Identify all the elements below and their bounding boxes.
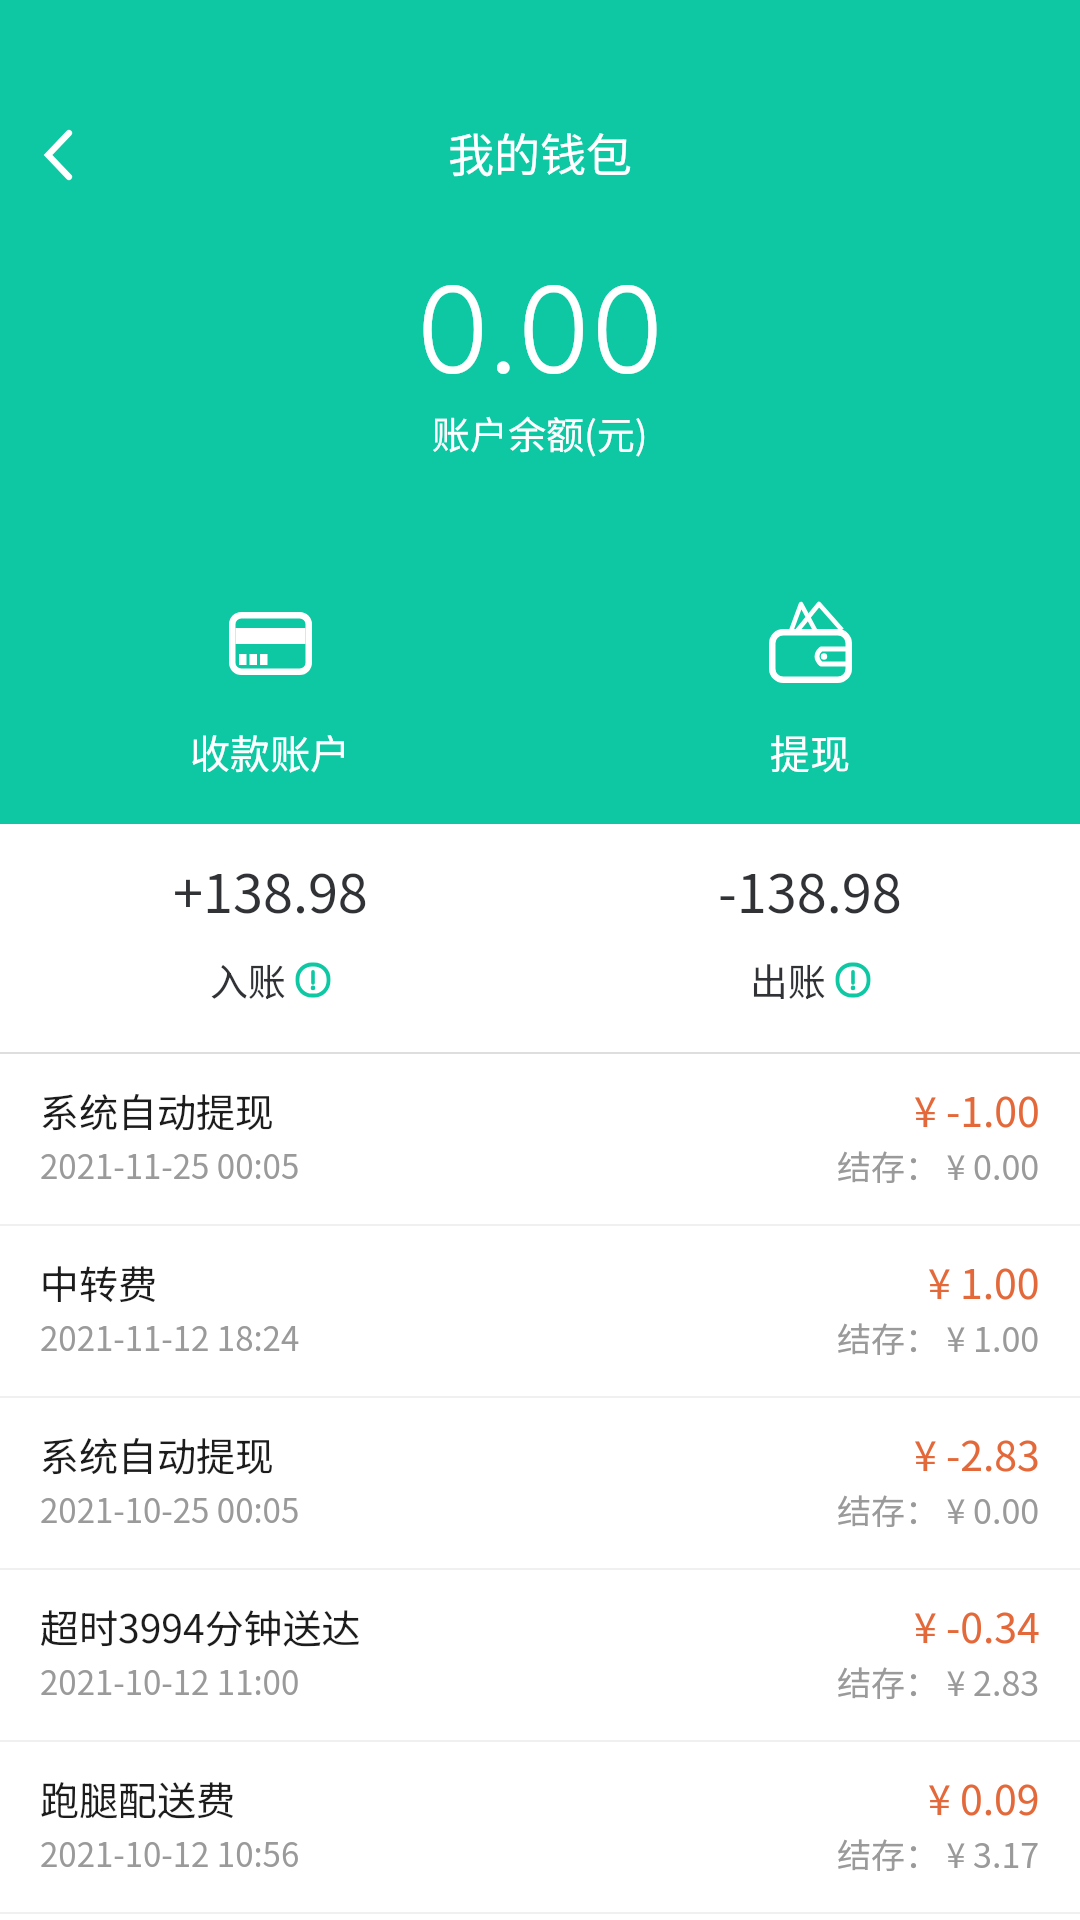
staticText: 超时3994分钟送达 (40, 1598, 361, 1654)
staticText: 跑腿配送费 (40, 1770, 236, 1826)
staticText: 账户余额(元) (432, 405, 648, 460)
staticText: 收款账户 (190, 723, 350, 781)
button[interactable]: Back (22, 117, 102, 197)
staticText: 入账 (210, 952, 287, 1007)
staticText: 我的钱包 (448, 119, 632, 186)
button[interactable]: -138.98 (540, 824, 1080, 1007)
staticText: 结存： ¥ 2.83 (837, 1657, 1040, 1706)
staticText: ¥ -2.83 (914, 1423, 1040, 1482)
button[interactable]: 系统自动提现 (0, 1398, 1080, 1568)
staticText: 结存： ¥ 3.17 (837, 1829, 1040, 1878)
button[interactable]: 提现 (540, 600, 1080, 781)
button[interactable]: 中转费 (0, 1226, 1080, 1396)
staticText: 2021-10-12 10:56 (40, 1829, 300, 1877)
button[interactable]: 跑腿配送费 (0, 1742, 1080, 1912)
staticText: 2021-10-25 00:05 (40, 1485, 300, 1533)
staticText: 系统自动提现 (40, 1082, 275, 1138)
button[interactable]: +138.98 (0, 824, 540, 1007)
staticText: ¥ -0.34 (914, 1595, 1040, 1654)
staticText: 结存： ¥ 1.00 (837, 1313, 1040, 1362)
staticText: -138.98 (718, 850, 902, 928)
staticText: 0.00 (416, 258, 665, 402)
staticText: 2021-11-25 00:05 (40, 1141, 300, 1189)
staticText: 2021-10-12 11:00 (40, 1657, 300, 1705)
staticText: +138.98 (173, 850, 368, 928)
staticText: 结存： ¥ 0.00 (837, 1141, 1040, 1190)
staticText: 出账 (750, 952, 827, 1007)
button[interactable]: 收款账户 (0, 600, 540, 781)
staticText: 提现 (770, 723, 850, 781)
staticText: ¥ -1.00 (914, 1079, 1040, 1138)
staticText: ¥ 1.00 (928, 1251, 1040, 1310)
button[interactable]: 系统自动提现 (0, 1054, 1080, 1224)
staticText: 结存： ¥ 0.00 (837, 1485, 1040, 1534)
staticText: 2021-11-12 18:24 (40, 1313, 300, 1361)
staticText: 系统自动提现 (40, 1426, 275, 1482)
staticText: 中转费 (40, 1254, 158, 1310)
staticText: ¥ 0.09 (928, 1767, 1040, 1826)
button[interactable]: 超时3994分钟送达 (0, 1570, 1080, 1740)
